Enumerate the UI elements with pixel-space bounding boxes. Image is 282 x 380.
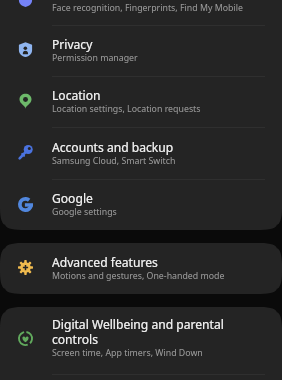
staticText: Accounts and backup: [52, 139, 174, 155]
staticText: Permission manager: [52, 52, 138, 64]
staticText: Samsung Cloud, Smart Switch: [52, 155, 176, 167]
staticText: Motions and gestures, One-handed mode: [52, 270, 225, 282]
staticText: Screen time, App timers, Wind Down: [52, 347, 203, 359]
staticText: Privacy: [52, 36, 93, 52]
button[interactable]: Digital Wellbeing and parental controls: [0, 307, 282, 374]
staticText: Location settings, Location requests: [52, 103, 201, 115]
button[interactable]: Biometrics and security: [0, 0, 282, 25]
button[interactable]: Advanced features: [0, 243, 282, 294]
staticText: Google settings: [52, 206, 117, 218]
button[interactable]: Privacy: [0, 26, 282, 76]
button[interactable]: Accounts and backup: [0, 128, 282, 179]
button[interactable]: Location: [0, 77, 282, 127]
staticText: Location: [52, 87, 101, 103]
staticText: Google: [52, 190, 93, 206]
button[interactable]: Google: [0, 180, 282, 230]
staticText: Advanced features: [52, 254, 158, 270]
staticText: Digital Wellbeing and parental controls: [52, 316, 224, 347]
staticText: Face recognition, Fingerprints, Find My …: [52, 2, 243, 14]
